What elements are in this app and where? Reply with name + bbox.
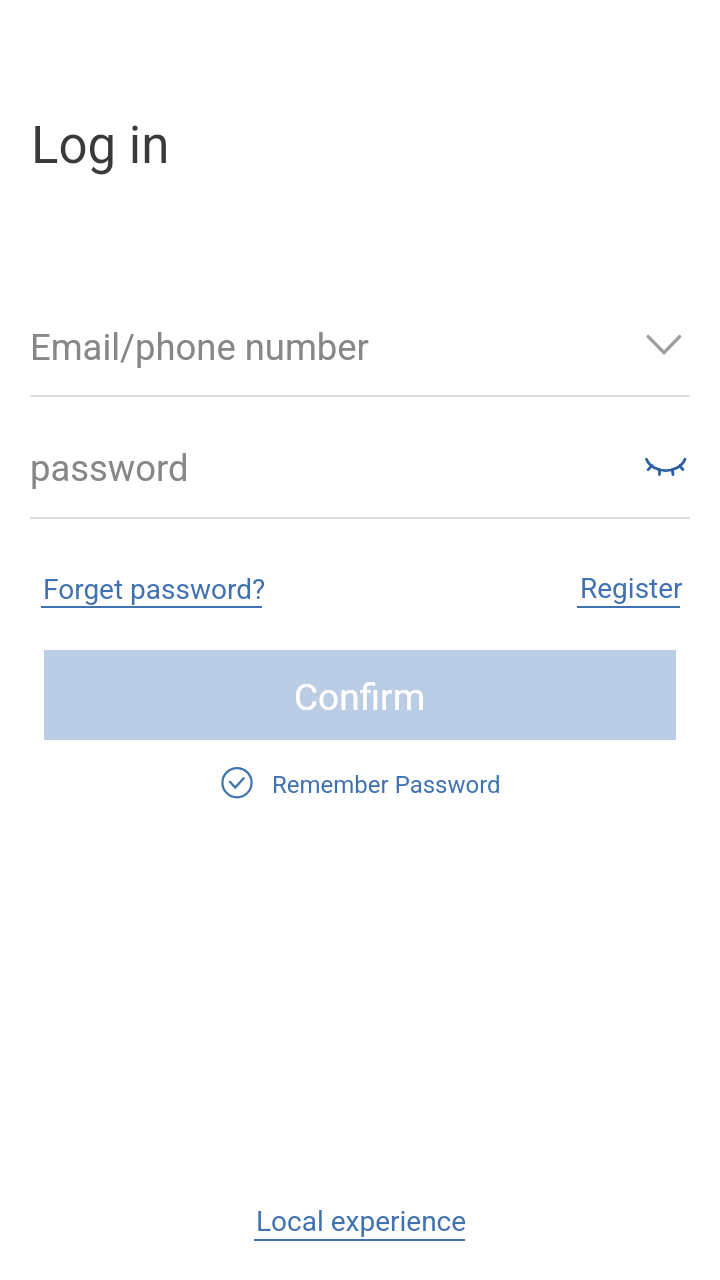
staticText: Confirm xyxy=(294,676,426,719)
button[interactable]: Forget password? xyxy=(41,566,266,614)
staticText: Email/phone number xyxy=(30,326,369,369)
staticText: Remember Password xyxy=(272,771,501,799)
staticText: Log in xyxy=(31,116,170,176)
button[interactable]: Register xyxy=(577,566,680,614)
button[interactable]: Email/phone number xyxy=(0,318,720,380)
staticText: Register xyxy=(580,572,683,605)
staticText: Forget password? xyxy=(43,573,266,606)
button[interactable]: Confirm xyxy=(44,650,676,740)
other: Expand xyxy=(640,326,688,374)
button[interactable]: Local experience xyxy=(254,1198,465,1246)
staticText: Local experience xyxy=(256,1205,467,1238)
staticText: password xyxy=(30,447,189,490)
button[interactable]: Remember Password xyxy=(218,766,501,804)
other: Show password xyxy=(640,446,688,494)
button[interactable]: password xyxy=(0,438,720,500)
